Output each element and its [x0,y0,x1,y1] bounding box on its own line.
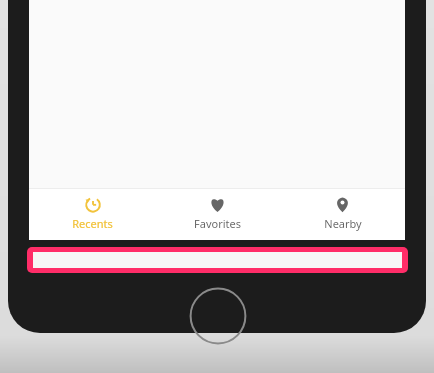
button[interactable]: Favorites [155,189,280,240]
staticText: Nearby [324,216,362,231]
button[interactable]: Home [189,287,247,345]
button[interactable]: Recents [29,189,155,240]
button[interactable]: Nearby [280,189,405,240]
staticText: Recents [72,216,113,231]
staticText: Favorites [194,216,241,231]
